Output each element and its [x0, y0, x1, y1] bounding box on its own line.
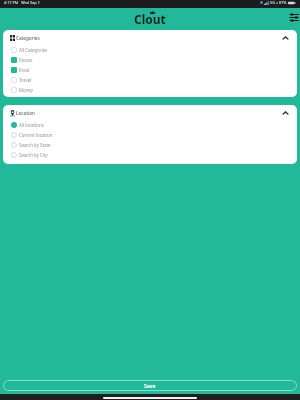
- button[interactable]: Current location: [3, 130, 297, 140]
- button[interactable]: All Categories: [3, 45, 297, 55]
- staticText: Search by State: [19, 142, 51, 148]
- staticText: Location: [16, 110, 35, 116]
- staticText: Travel: [19, 77, 32, 83]
- staticText: Search by City: [19, 152, 48, 158]
- staticText: Money: [19, 87, 33, 93]
- button[interactable]: Categories: [3, 31, 297, 45]
- staticText: Categories: [16, 35, 40, 41]
- button[interactable]: Food: [3, 65, 297, 75]
- staticText: 87%: [279, 0, 287, 5]
- button[interactable]: Search by State: [3, 140, 297, 150]
- staticText: All Categories: [19, 47, 48, 53]
- button[interactable]: Travel: [3, 75, 297, 85]
- button[interactable]: Soccer: [3, 55, 297, 65]
- staticText: Food: [19, 67, 30, 73]
- staticText: Current location: [19, 132, 53, 138]
- staticText: Save: [144, 382, 156, 389]
- button[interactable]: Money: [3, 85, 297, 95]
- button[interactable]: Search by City: [3, 150, 297, 160]
- staticText: 5G: [270, 0, 275, 5]
- button[interactable]: Location: [3, 106, 297, 120]
- staticText: 4:17 PM Wed Sep 1: [4, 0, 40, 5]
- staticText: Clout: [134, 11, 166, 27]
- staticText: All locations: [19, 122, 44, 128]
- button[interactable]: All locations: [3, 120, 297, 130]
- button[interactable]: Filter settings: [289, 13, 299, 22]
- staticText: Soccer: [19, 57, 33, 63]
- button[interactable]: Save: [3, 380, 297, 391]
